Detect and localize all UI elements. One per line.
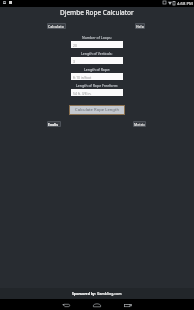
- staticText: Djembe Rope Calculator: [60, 8, 134, 17]
- staticText: 3: [73, 59, 75, 63]
- button[interactable]: 20: [71, 41, 123, 48]
- button[interactable]: ft 10 in/foot: [71, 73, 123, 80]
- staticText: Calculator: [48, 24, 65, 28]
- button[interactable]: Calculator: [48, 24, 65, 28]
- staticText: 54 ft. 3/8 in.: [73, 91, 92, 95]
- staticText: 4:58 PM: [177, 1, 193, 7]
- staticText: Gambling.com: [97, 291, 122, 296]
- staticText: Calculate Rope Length: [75, 107, 120, 113]
- button[interactable]: Calculate Rope Length: [70, 106, 124, 114]
- staticText: Help: [136, 24, 144, 28]
- staticText: Number of Loops:: [82, 35, 112, 40]
- staticText: Metric: [134, 122, 145, 126]
- button[interactable]: Recents: [120, 299, 136, 310]
- button[interactable]: Metric: [134, 122, 145, 126]
- staticText: English: [48, 122, 60, 126]
- staticText: Length of Rope Freeform:: [76, 83, 119, 88]
- staticText: Sponsored by:: [72, 291, 97, 296]
- staticText: Length of Rope:: [84, 67, 111, 72]
- staticText: ft 10 in/foot: [73, 75, 92, 79]
- button[interactable]: 3: [71, 57, 123, 64]
- staticText: 20: [73, 43, 77, 47]
- button[interactable]: 54 ft. 3/8 in.: [71, 89, 123, 96]
- staticText: Length of Verticals:: [81, 51, 113, 56]
- button[interactable]: Help: [136, 24, 144, 28]
- button[interactable]: Home: [89, 299, 105, 310]
- button[interactable]: English: [48, 122, 60, 126]
- button[interactable]: Back: [58, 299, 74, 310]
